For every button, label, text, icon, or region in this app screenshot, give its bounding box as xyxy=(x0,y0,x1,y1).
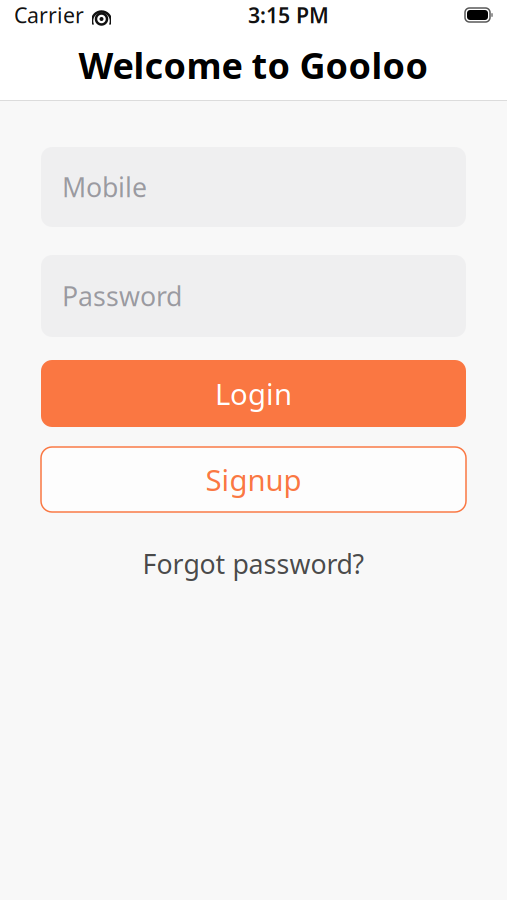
staticText: Login xyxy=(215,374,292,413)
staticText: Forgot password? xyxy=(142,546,364,581)
staticText: Password xyxy=(62,278,182,314)
staticText: Mobile xyxy=(62,169,147,205)
staticText: 3:15 PM xyxy=(248,1,329,29)
button[interactable]: Forgot password? xyxy=(130,538,376,589)
button[interactable]: Password xyxy=(41,255,466,337)
staticText: Welcome to Gooloo xyxy=(78,41,428,89)
button[interactable]: Mobile xyxy=(41,147,466,227)
staticText: Signup xyxy=(205,460,301,499)
button[interactable]: Signup xyxy=(41,447,466,512)
staticText: Carrier xyxy=(14,1,84,29)
button[interactable]: Login xyxy=(41,360,466,427)
